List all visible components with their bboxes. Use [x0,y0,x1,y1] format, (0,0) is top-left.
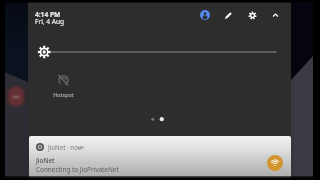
staticText: JioNet · now [48,143,83,151]
button[interactable]: Account [195,5,215,25]
button[interactable]: Settings [242,5,262,25]
staticText: 4:14 PM [35,10,61,19]
staticText: Hotspot [53,91,74,98]
staticText: Fri, 4 Aug [35,17,65,26]
staticText: Connecting to JioPrivateNet [36,165,119,174]
button[interactable]: JioNet · now [29,136,291,180]
button[interactable] [28,40,291,64]
button[interactable]: Hotspot [52,74,75,98]
button[interactable]: Edit tiles [218,5,238,25]
staticText: JioNet [36,156,55,165]
button[interactable]: Collapse [265,5,285,25]
